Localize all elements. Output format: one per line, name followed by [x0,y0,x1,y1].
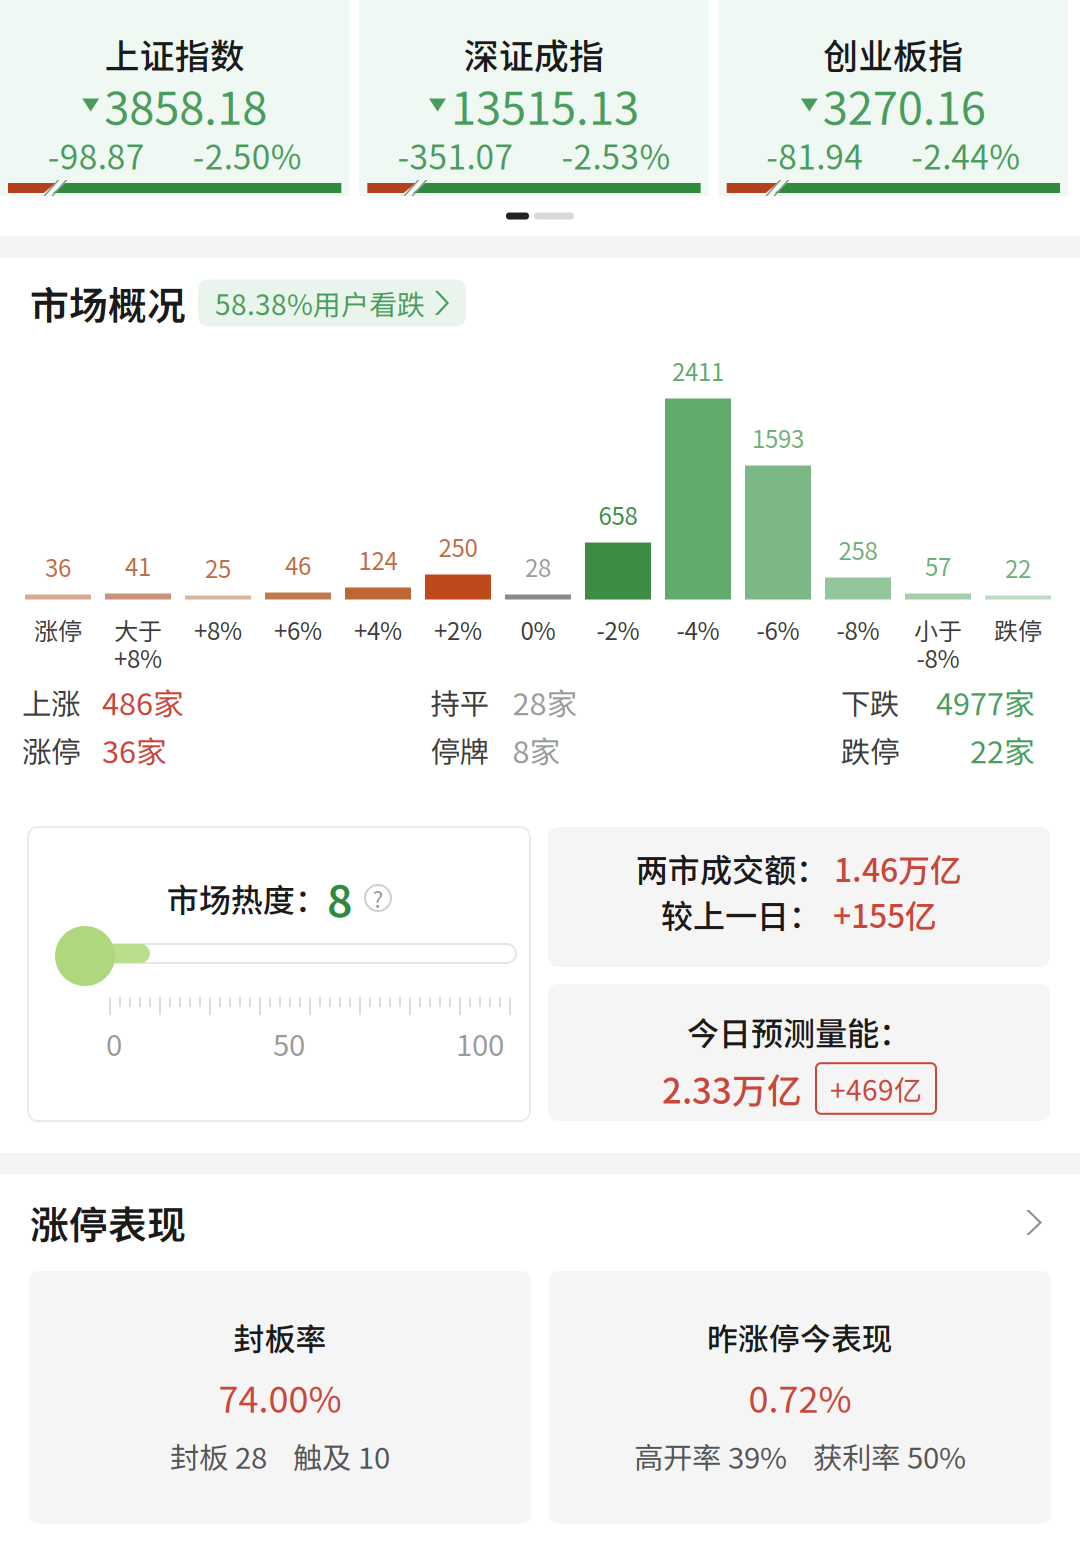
staticText: 创业板指 [823,29,963,79]
staticText: 100 [456,1022,504,1064]
staticText: 13515.13 [451,72,639,138]
staticText: 25 [205,550,231,585]
staticText: 上涨 [22,681,80,723]
staticText: 1.46万亿 [834,845,962,891]
staticText: 28 [525,549,551,584]
staticText: 0% [520,612,555,647]
staticText: +2% [434,612,482,647]
staticText: 57 [925,548,951,583]
staticText: 0.72% [748,1371,851,1423]
staticText: 8 [327,866,353,930]
staticText: 50 [273,1022,305,1064]
staticText: 涨停 [22,729,80,771]
staticText: -2.53% [561,131,670,179]
staticText: 36家 [102,728,167,772]
staticText: +6% [274,612,322,647]
button[interactable]: 上证指数 [0,0,349,196]
staticText: +4% [354,612,402,647]
button[interactable]: 58.38%用户看跌 [198,279,466,326]
staticText: 获利率 50% [813,1435,966,1477]
staticText: 今日预测量能： [687,1008,911,1054]
staticText: 封板 28 [170,1435,267,1477]
staticText: -6% [756,612,799,647]
staticText: -8% [916,640,959,675]
staticText: 市场热度： [167,875,327,921]
staticText: 28家 [512,680,577,724]
staticText: 较上一日： [661,891,821,937]
staticText: 高开率 39% [634,1435,787,1477]
staticText: -2.44% [911,131,1020,179]
staticText: +469亿 [830,1068,922,1109]
staticText: 停牌 [430,729,488,771]
staticText: +8% [194,612,242,647]
staticText: 22家 [970,728,1035,772]
staticText: 8家 [512,728,560,772]
staticText: 持平 [430,681,488,723]
staticText: 3858.18 [104,72,267,138]
staticText: 46 [285,547,311,582]
staticText: 上证指数 [105,29,245,79]
staticText: -2% [596,612,639,647]
staticText: 小于 [914,612,962,647]
staticText: 跌停 [841,729,899,771]
button[interactable]: 涨停表现 [0,1174,1080,1271]
staticText: 触及 10 [293,1435,390,1477]
staticText: 41 [125,548,151,583]
staticText: 22 [1005,550,1031,585]
staticText: 0 [106,1022,122,1064]
staticText: -81.94 [766,131,863,179]
staticText: 涨停表现 [30,1194,186,1250]
staticText: +8% [114,640,162,675]
staticText: 58.38%用户看跌 [215,283,425,323]
staticText: 2.33万亿 [662,1063,802,1114]
staticText: 涨停 [34,612,82,647]
staticText: 两市成交额： [636,845,828,891]
staticText: +155亿 [833,891,937,937]
staticText: 下跌 [841,681,899,723]
staticText: ? [372,882,383,914]
staticText: 深证成指 [464,29,604,79]
staticText: 486家 [102,680,184,724]
staticText: 258 [838,532,877,567]
staticText: -2.50% [193,131,302,179]
staticText: -8% [836,612,879,647]
staticText: 昨涨停今表现 [707,1315,893,1359]
staticText: 124 [358,542,397,577]
staticText: -98.87 [48,131,145,179]
staticText: 跌停 [994,612,1042,647]
staticText: 36 [45,549,71,584]
staticText: 大于 [114,612,162,647]
staticText: 2411 [672,353,724,388]
staticText: 3270.16 [823,72,986,138]
button[interactable]: 创业板指 [719,0,1068,196]
staticText: 4977家 [936,680,1035,724]
staticText: 74.00% [218,1371,341,1423]
button[interactable]: 深证成指 [359,0,709,196]
staticText: -4% [676,612,719,647]
staticText: -351.07 [397,131,513,179]
staticText: 658 [598,497,637,532]
staticText: 1593 [752,420,804,455]
staticText: 市场概况 [30,275,186,331]
staticText: 封板率 [233,1315,326,1359]
staticText: 250 [438,529,477,564]
